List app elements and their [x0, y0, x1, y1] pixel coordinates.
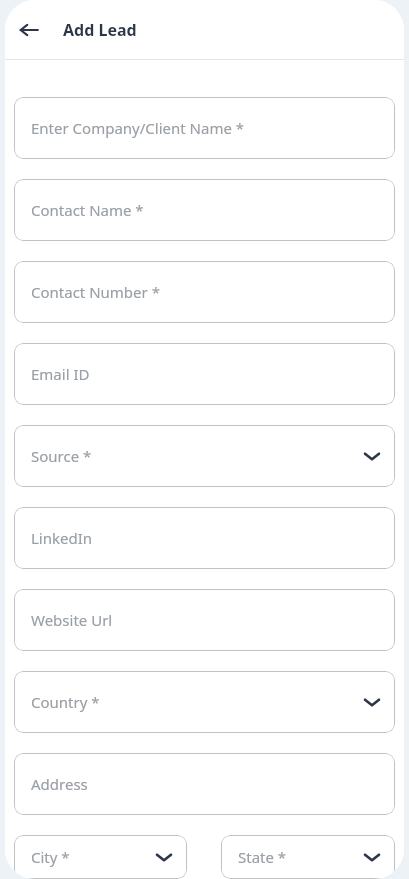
staticText: Contact Number * — [31, 282, 160, 302]
staticText: Source * — [31, 446, 92, 466]
staticText: State * — [238, 847, 287, 867]
button[interactable]: Source * — [14, 425, 395, 487]
staticText: Country * — [31, 692, 100, 712]
staticText: City * — [31, 847, 70, 867]
button[interactable]: Email ID — [14, 343, 395, 405]
button[interactable]: Enter Company/Client Name * — [14, 97, 395, 159]
button[interactable]: Country * — [14, 671, 395, 733]
staticText: Address — [31, 774, 88, 794]
button[interactable]: Address — [14, 753, 395, 815]
staticText: Email ID — [31, 364, 90, 384]
button[interactable]: Contact Number * — [14, 261, 395, 323]
staticText: LinkedIn — [31, 528, 93, 548]
button[interactable]: City * — [14, 835, 187, 879]
button[interactable]: Contact Name * — [14, 179, 395, 241]
staticText: Website Url — [31, 610, 113, 630]
staticText: Contact Name * — [31, 200, 144, 220]
staticText: Enter Company/Client Name * — [31, 118, 245, 138]
button[interactable]: Back — [13, 14, 45, 46]
button[interactable]: Website Url — [14, 589, 395, 651]
button[interactable]: LinkedIn — [14, 507, 395, 569]
staticText: Add Lead — [63, 19, 137, 41]
button[interactable]: State * — [221, 835, 395, 879]
